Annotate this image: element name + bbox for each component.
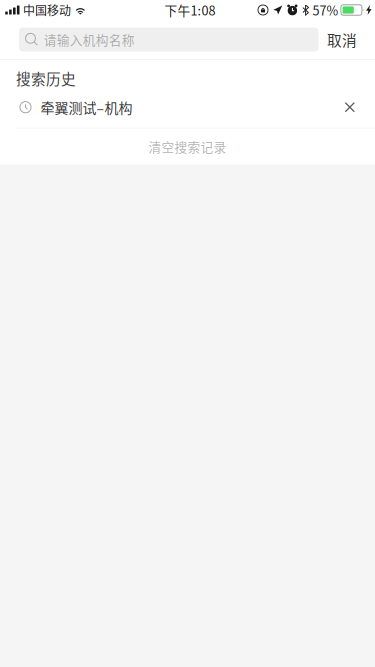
staticText: 请输入机构名称 [44,30,135,49]
staticText: 搜索历史 [16,68,76,89]
staticText: 取消 [327,29,357,50]
staticText: 牵翼测试–机构 [40,97,132,117]
staticText: 清空搜索记录 [148,137,226,155]
button[interactable]: 取消 [318,20,365,59]
staticText: 下午1:08 [165,1,216,19]
staticText: 57% [312,1,338,19]
button[interactable]: 牵翼测试–机构 [0,97,375,128]
button[interactable]: 清空搜索记录 [0,128,375,164]
staticText: 中国移动 [23,1,71,19]
